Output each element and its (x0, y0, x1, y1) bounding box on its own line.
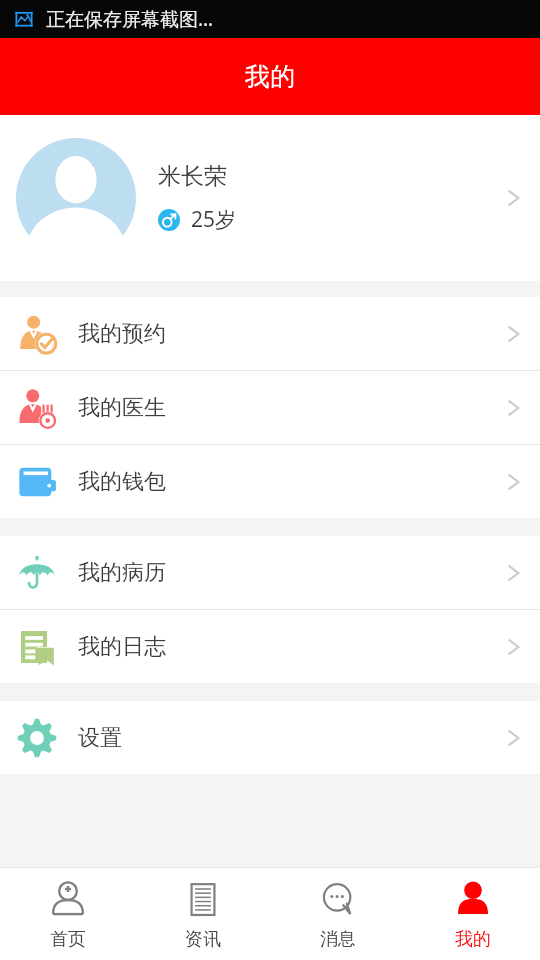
staticText: 我的日志 (78, 633, 166, 661)
staticText: 我的 (245, 61, 295, 92)
staticText: 首页 (50, 928, 86, 951)
button[interactable]: 我的病历 (0, 536, 540, 609)
button[interactable]: 我的医生 (0, 371, 540, 444)
staticText: 资讯 (185, 928, 221, 951)
staticText: 我的病历 (78, 559, 166, 587)
button[interactable]: 资讯 (135, 868, 270, 960)
button[interactable]: 我的钱包 (0, 445, 540, 518)
button[interactable]: 首页 (0, 868, 135, 960)
staticText: 我的医生 (78, 394, 166, 422)
staticText: 米长荣 (158, 162, 227, 191)
staticText: 我的预约 (78, 320, 166, 348)
staticText: 正在保存屏幕截图… (46, 6, 214, 32)
button[interactable]: 我的 (405, 868, 540, 960)
staticText: 我的钱包 (78, 468, 166, 496)
staticText: 25岁 (191, 205, 237, 234)
button[interactable]: 设置 (0, 701, 540, 774)
button[interactable]: 我的日志 (0, 610, 540, 683)
button[interactable]: 消息 (270, 868, 405, 960)
staticText: 我的 (455, 928, 491, 951)
staticText: 设置 (78, 724, 122, 752)
button[interactable]: 米长荣 (0, 115, 540, 281)
staticText: 消息 (320, 928, 356, 951)
button[interactable]: 我的预约 (0, 297, 540, 370)
